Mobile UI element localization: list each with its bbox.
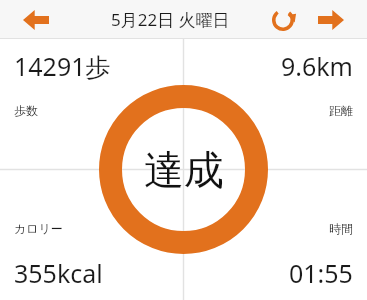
staticText: 達成 [144,145,224,195]
staticText: 5月22日 火曜日 [111,8,230,31]
staticText: 355kcal [14,256,103,290]
staticText: 01:55 [289,256,353,290]
staticText: 時間 [329,221,353,236]
button[interactable]: 達成 [99,85,268,254]
staticText: 14291歩 [14,49,111,83]
staticText: 9.6km [280,49,353,83]
staticText: 歩数 [14,103,38,118]
button[interactable]: Refresh [265,3,301,37]
staticText: 距離 [329,103,353,118]
button[interactable]: Next day [309,3,353,37]
staticText: カロリー [14,221,63,236]
button[interactable]: Previous day [14,3,58,37]
